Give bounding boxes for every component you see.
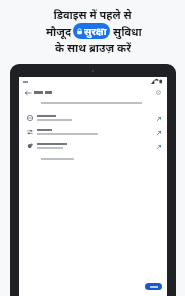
- button[interactable]: सेटिंग: [154, 88, 163, 97]
- staticText: सुविधा: [110, 24, 142, 39]
- button[interactable]: खोलें: [19, 139, 167, 153]
- button[interactable]: खोलें: [19, 111, 167, 125]
- button[interactable]: आगे बढ़ें: [145, 283, 162, 290]
- button[interactable]: वापस जाएं: [23, 88, 32, 97]
- button[interactable]: खोलें: [155, 115, 162, 122]
- button[interactable]: खोलें: [155, 129, 162, 136]
- staticText: के साथ ब्राउज़ करें: [55, 40, 131, 55]
- staticText: डिवाइस में पहले से: [53, 7, 132, 22]
- button[interactable]: खोलें: [19, 125, 167, 139]
- staticText: सुरक्षा: [84, 24, 107, 38]
- staticText: मौजूद: [44, 24, 73, 39]
- button[interactable]: खोलें: [155, 143, 162, 150]
- button[interactable]: सुरक्षा: [73, 23, 110, 39]
